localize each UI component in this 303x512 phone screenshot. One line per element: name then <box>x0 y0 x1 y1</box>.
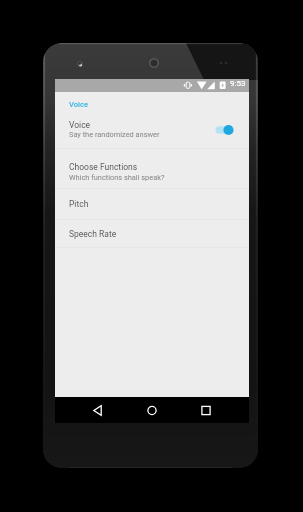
button[interactable]: Voice toggle <box>214 123 236 137</box>
button[interactable]: Recent apps <box>196 397 216 423</box>
button[interactable] <box>55 219 249 248</box>
button[interactable] <box>55 188 249 219</box>
staticText: Choose Functions <box>69 162 138 172</box>
button[interactable] <box>55 113 249 149</box>
staticText: Say the randomized answer <box>69 130 160 139</box>
staticText: Speech Rate <box>69 229 117 239</box>
staticText: 9:53 <box>230 79 246 88</box>
button[interactable]: Home <box>142 397 162 423</box>
staticText: Pitch <box>69 199 89 209</box>
staticText: Which functions shall speak? <box>69 173 165 182</box>
button[interactable] <box>55 148 249 188</box>
staticText: Voice <box>69 100 89 109</box>
staticText: Voice <box>69 120 91 130</box>
button[interactable]: Back <box>88 397 108 423</box>
